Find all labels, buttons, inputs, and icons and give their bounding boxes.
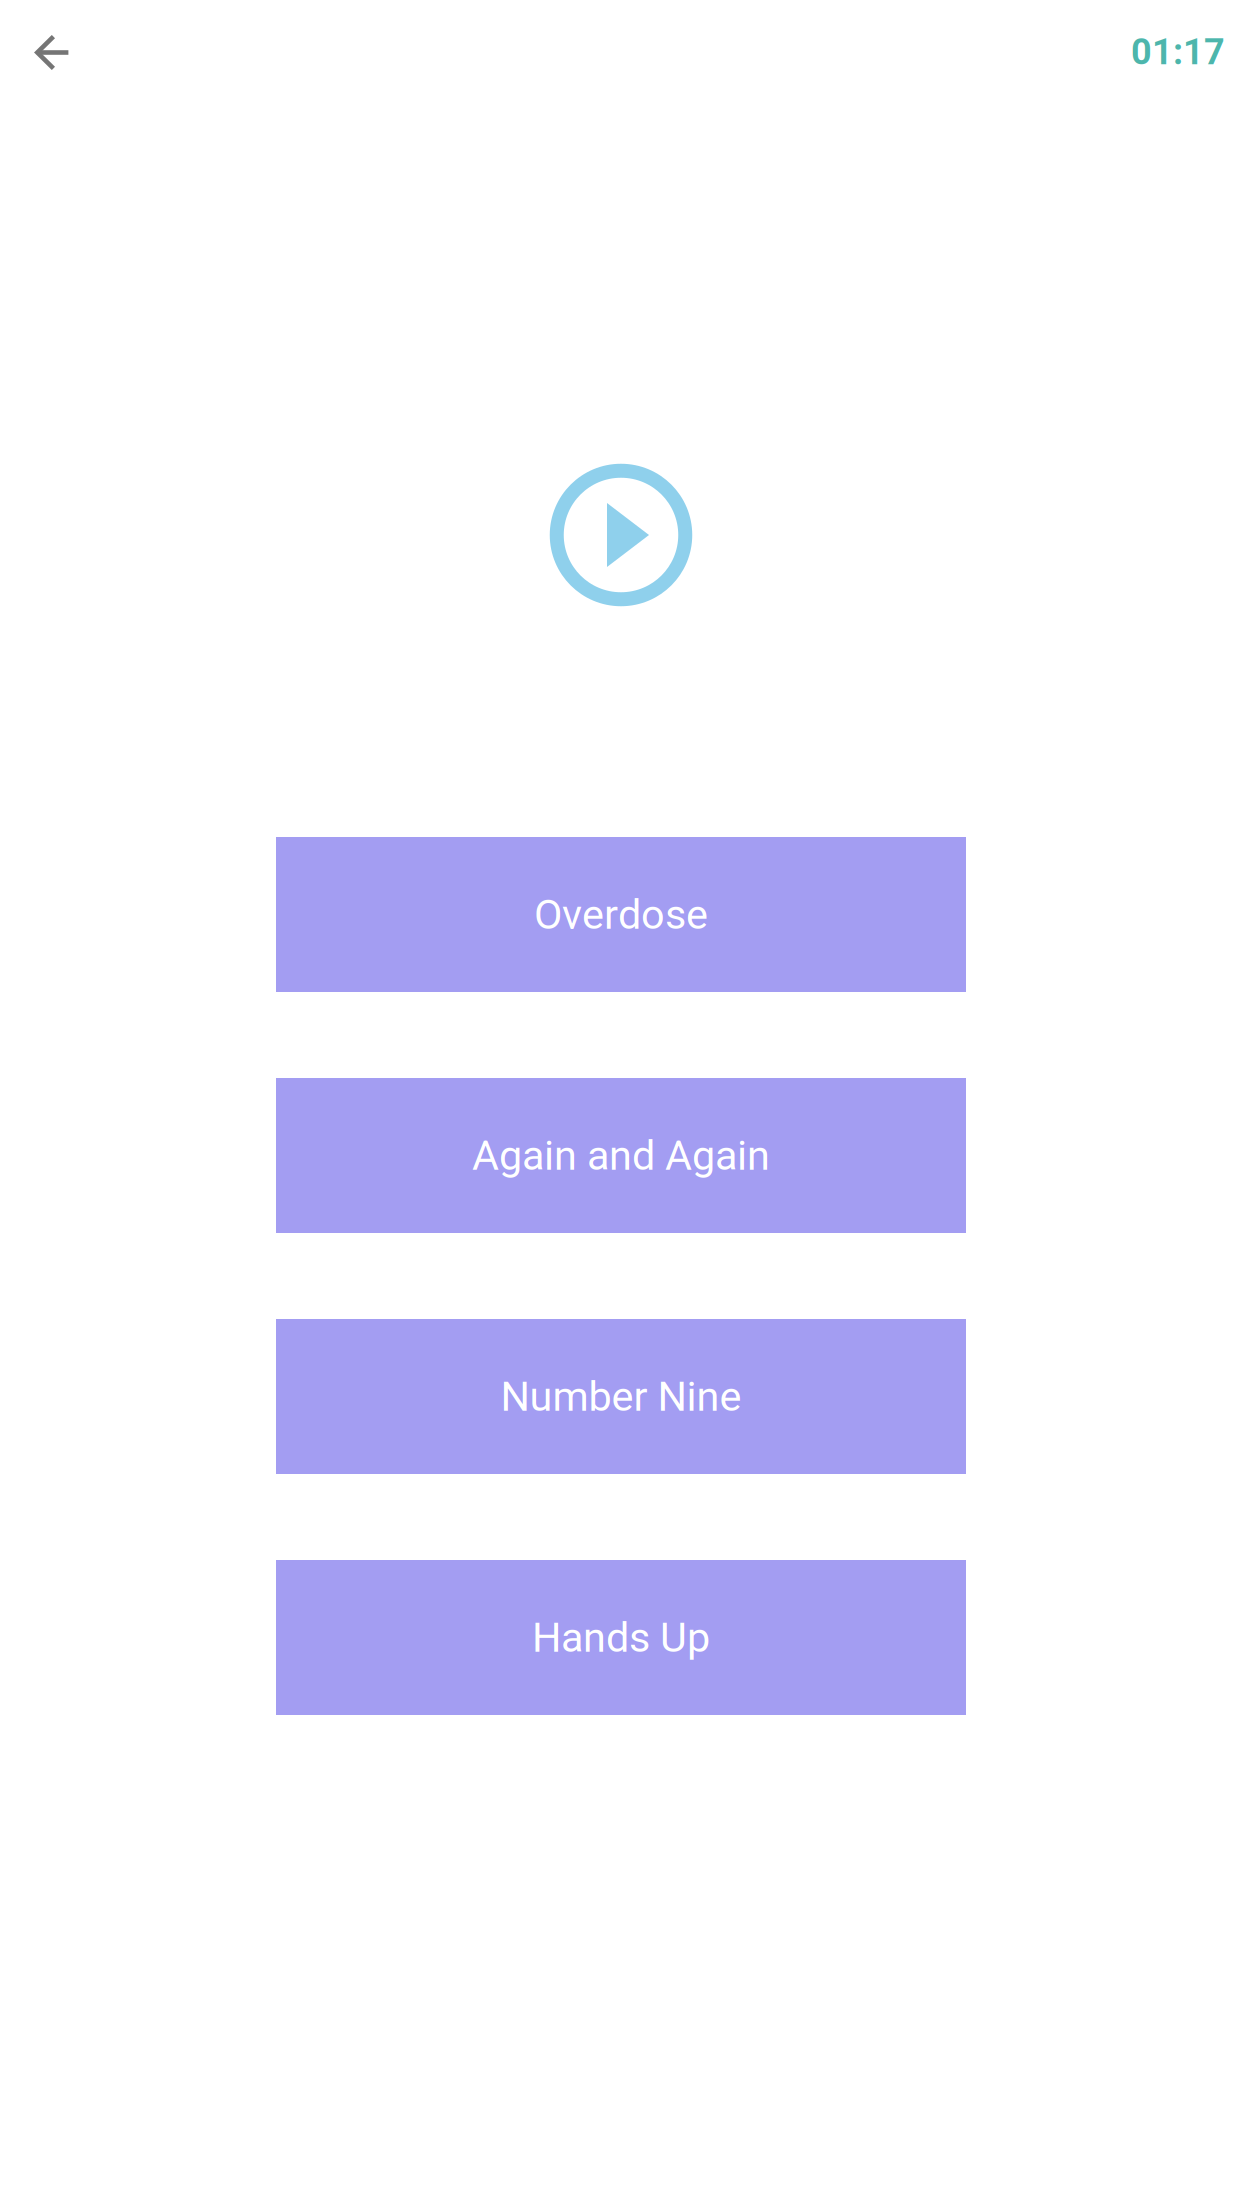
staticText: Hands Up [532, 1613, 710, 1662]
button[interactable]: Number Nine [276, 1319, 966, 1474]
button[interactable]: Back [0, 0, 104, 104]
staticText: Again and Again [472, 1131, 770, 1180]
staticText: Number Nine [500, 1372, 741, 1421]
staticText: 01:17 [1131, 31, 1225, 73]
button[interactable]: Overdose [276, 837, 966, 992]
staticText: Overdose [534, 890, 708, 939]
button[interactable]: Play [538, 452, 704, 618]
button[interactable]: Again and Again [276, 1078, 966, 1233]
button[interactable]: Hands Up [276, 1560, 966, 1715]
